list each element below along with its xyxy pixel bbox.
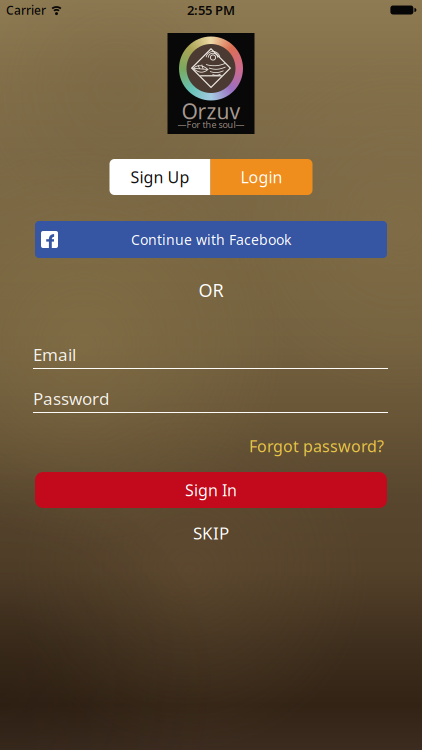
- staticText: Carrier: [6, 2, 46, 18]
- staticText: Sign In: [185, 479, 237, 501]
- staticText: Continue with Facebook: [131, 230, 291, 249]
- staticText: Email: [33, 343, 76, 366]
- staticText: Orzuv: [181, 97, 240, 125]
- staticText: —For the soul—: [177, 118, 244, 131]
- staticText: Forgot password?: [249, 435, 384, 457]
- staticText: OR: [198, 278, 223, 302]
- button[interactable]: Continue with Facebook: [35, 221, 387, 258]
- staticText: Sign Up: [130, 166, 189, 188]
- staticText: Password: [33, 387, 109, 410]
- staticText: 2:55 PM: [187, 1, 235, 19]
- staticText: Login: [240, 166, 282, 188]
- button[interactable]: SKIP: [193, 524, 229, 542]
- button[interactable]: Login: [210, 159, 312, 195]
- button[interactable]: Sign Up: [109, 159, 210, 195]
- button[interactable]: Sign In: [35, 472, 387, 508]
- staticText: SKIP: [193, 521, 229, 545]
- button[interactable]: Forgot password?: [249, 437, 384, 455]
